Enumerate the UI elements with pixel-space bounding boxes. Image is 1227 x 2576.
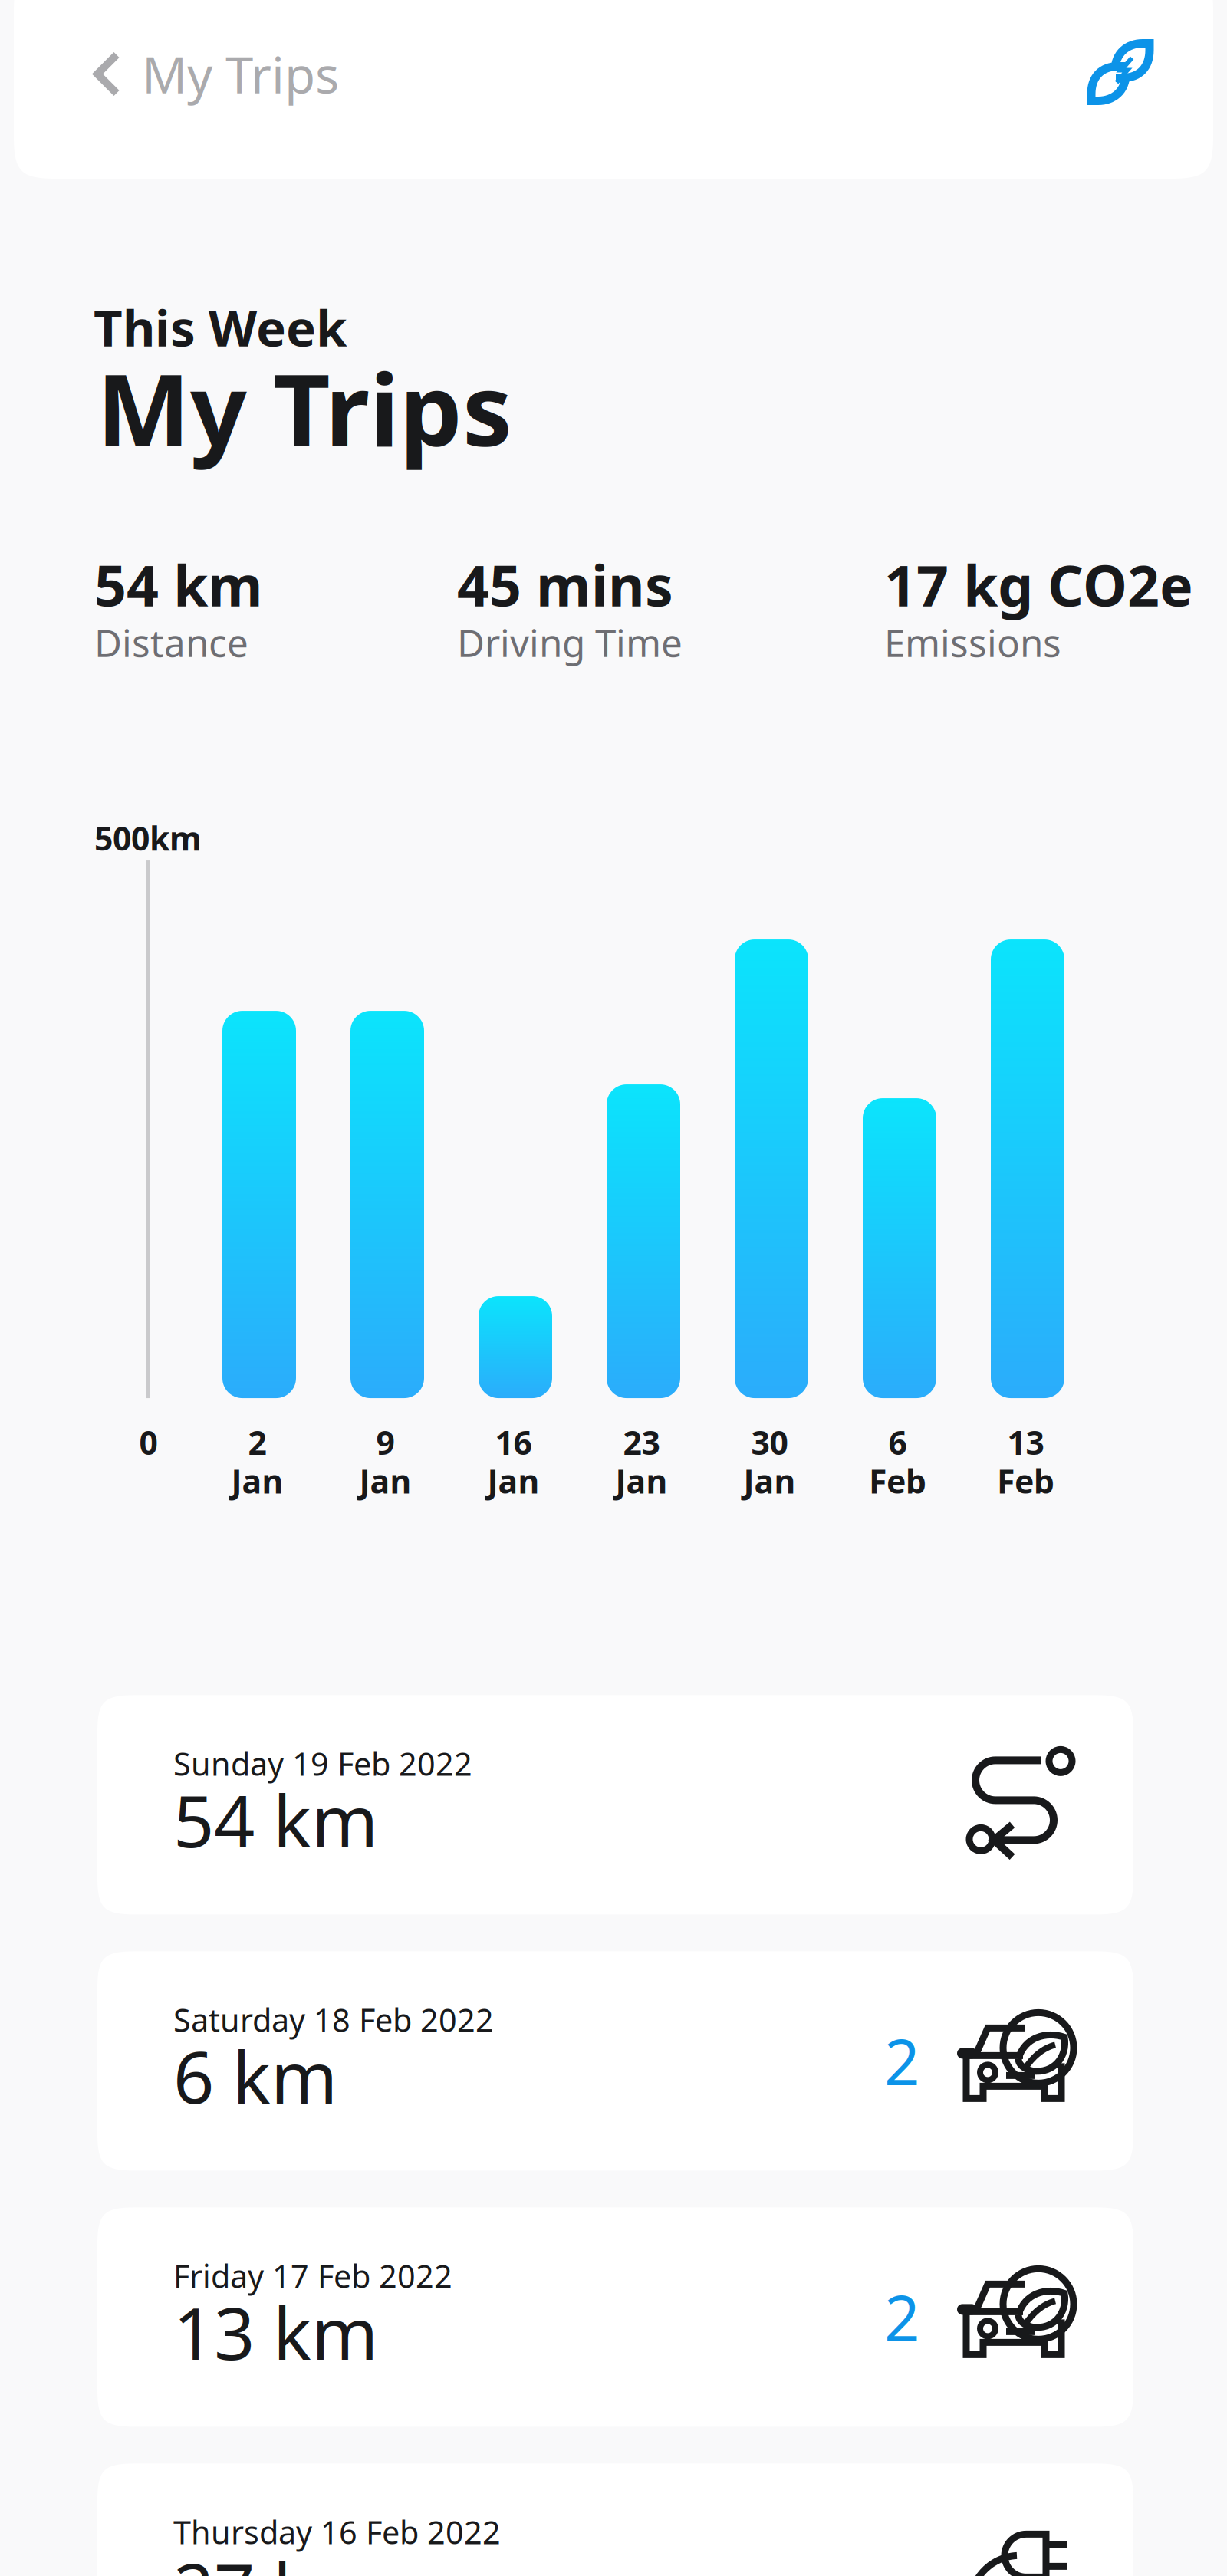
staticText: Saturday 18 Feb 2022 (173, 1999, 494, 2041)
staticText: My Trips (142, 41, 339, 107)
staticText: Sunday 19 Feb 2022 (173, 1742, 472, 1784)
staticText: This Week (94, 294, 347, 360)
staticText: 16 (495, 1420, 532, 1464)
staticText: Driving Time (457, 617, 683, 668)
staticText: Jan (359, 1459, 411, 1503)
staticText: 6 km (173, 2028, 337, 2123)
staticText: 9 (376, 1420, 395, 1464)
staticText: 2 (248, 1420, 266, 1464)
staticText: 23 (623, 1420, 660, 1464)
staticText: Jan (743, 1459, 796, 1503)
staticText: 13 km (173, 2285, 378, 2380)
staticText: 6 (888, 1420, 907, 1464)
staticText: Distance (94, 617, 248, 668)
staticText: 13 (1007, 1420, 1044, 1464)
staticText: 30 (751, 1420, 788, 1464)
button[interactable]: Sunday 19 Feb 2022 (97, 1695, 1133, 1914)
staticText: Feb (997, 1459, 1054, 1503)
button[interactable]: Friday 17 Feb 2022 (97, 2207, 1133, 2427)
button[interactable]: Connect vehicle (1087, 12, 1213, 136)
staticText: 27 km (173, 2541, 378, 2576)
staticText: 2 (884, 2276, 920, 2359)
staticText: 0 (139, 1420, 158, 1464)
staticText: 2 (884, 2020, 920, 2102)
staticText: 54 km (173, 1772, 378, 1867)
staticText: Feb (869, 1459, 926, 1503)
staticText: My Trips (97, 342, 512, 474)
staticText: Jan (231, 1459, 283, 1503)
staticText: 500km (94, 816, 202, 860)
button[interactable]: Thursday 16 Feb 2022 (97, 2464, 1133, 2576)
staticText: Jan (487, 1459, 539, 1503)
staticText: Thursday 16 Feb 2022 (173, 2511, 501, 2553)
staticText: 54 km (94, 547, 263, 622)
staticText: Jan (615, 1459, 668, 1503)
staticText: 45 mins (457, 547, 673, 622)
staticText: Emissions (884, 617, 1061, 668)
staticText: Friday 17 Feb 2022 (173, 2255, 452, 2297)
button[interactable]: Saturday 18 Feb 2022 (97, 1951, 1133, 2171)
button[interactable]: My Trips (14, 5, 370, 143)
staticText: 17 kg CO2e (884, 547, 1193, 622)
